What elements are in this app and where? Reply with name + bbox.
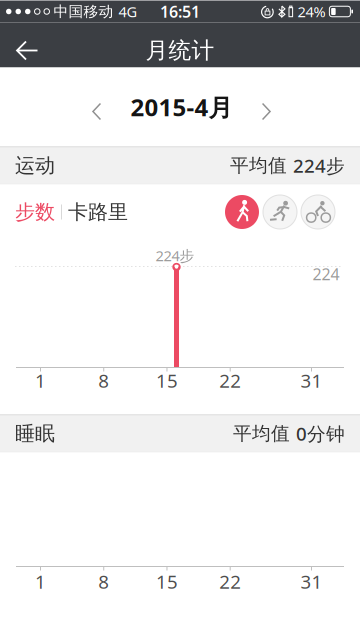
staticText: 224 — [312, 263, 339, 285]
staticText: 224步 — [155, 246, 194, 265]
staticText: 15 — [156, 569, 178, 594]
staticText: 1 — [35, 569, 46, 594]
staticText: 31 — [300, 569, 322, 594]
staticText: 睡眠 — [15, 421, 55, 446]
staticText: 31 — [300, 368, 322, 393]
staticText: 月统计 — [145, 37, 214, 64]
staticText: 16:51 — [160, 1, 200, 22]
staticText: 24% — [297, 2, 325, 21]
staticText: 2015-4月 — [130, 91, 232, 123]
staticText: 224步 — [293, 153, 345, 178]
button[interactable]: Back — [0, 22, 58, 67]
button[interactable]: Next month — [252, 92, 281, 130]
staticText: 运动 — [15, 153, 55, 178]
staticText: 8 — [98, 368, 109, 393]
button[interactable]: Running — [259, 195, 297, 229]
staticText: 卡路里 — [68, 200, 128, 224]
button[interactable]: 步数 — [0, 200, 55, 224]
button[interactable]: Steps (walking) — [225, 195, 259, 229]
staticText: 8 — [98, 569, 109, 594]
staticText: 平均值 — [233, 422, 296, 445]
staticText: 22 — [219, 569, 241, 594]
staticText: 22 — [219, 368, 241, 393]
staticText: 步数 — [15, 200, 55, 224]
staticText: 中国移动 — [53, 2, 113, 20]
staticText: 4G — [118, 2, 137, 21]
staticText: 平均值 — [230, 154, 293, 177]
staticText: 1 — [35, 368, 46, 393]
button[interactable]: Cycling — [297, 195, 335, 229]
button[interactable]: Previous month — [82, 92, 111, 130]
staticText: 15 — [156, 368, 178, 393]
staticText: 0分钟 — [296, 421, 345, 446]
button[interactable]: 卡路里 — [68, 200, 128, 224]
